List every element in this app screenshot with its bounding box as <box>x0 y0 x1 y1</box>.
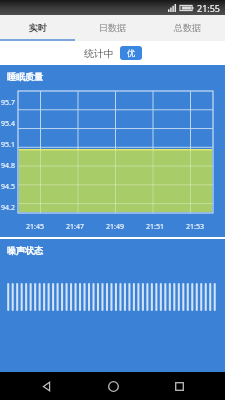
staticText: 21:53 <box>186 222 204 232</box>
staticText: 总数据 <box>174 22 201 33</box>
staticText: 21:55 <box>197 2 221 14</box>
staticText: 95.1 <box>1 140 15 150</box>
staticText: 统计中 <box>84 47 114 60</box>
staticText: 睡眠质量 <box>7 71 43 82</box>
button[interactable]: 优 <box>127 48 135 58</box>
staticText: 日数据 <box>99 22 126 33</box>
staticText: 21:45 <box>26 222 44 232</box>
staticText: 94.5 <box>1 182 15 192</box>
staticText: 噪声状态 <box>7 245 43 256</box>
button[interactable]: Recents <box>159 372 199 400</box>
button[interactable]: 总数据 <box>150 15 225 39</box>
staticText: 21:47 <box>66 222 84 232</box>
button[interactable]: Back <box>26 372 66 400</box>
staticText: 94.8 <box>1 161 15 171</box>
staticText: 95.4 <box>1 119 15 129</box>
staticText: 优 <box>127 48 135 58</box>
staticText: 95.7 <box>1 98 15 108</box>
button[interactable]: Home <box>93 372 133 400</box>
staticText: 实时 <box>29 22 47 33</box>
staticText: 21:51 <box>146 222 164 232</box>
staticText: 94.2 <box>1 203 15 213</box>
staticText: 21:49 <box>106 222 124 232</box>
button[interactable]: 日数据 <box>75 15 150 39</box>
button[interactable]: 实时 <box>0 15 75 39</box>
